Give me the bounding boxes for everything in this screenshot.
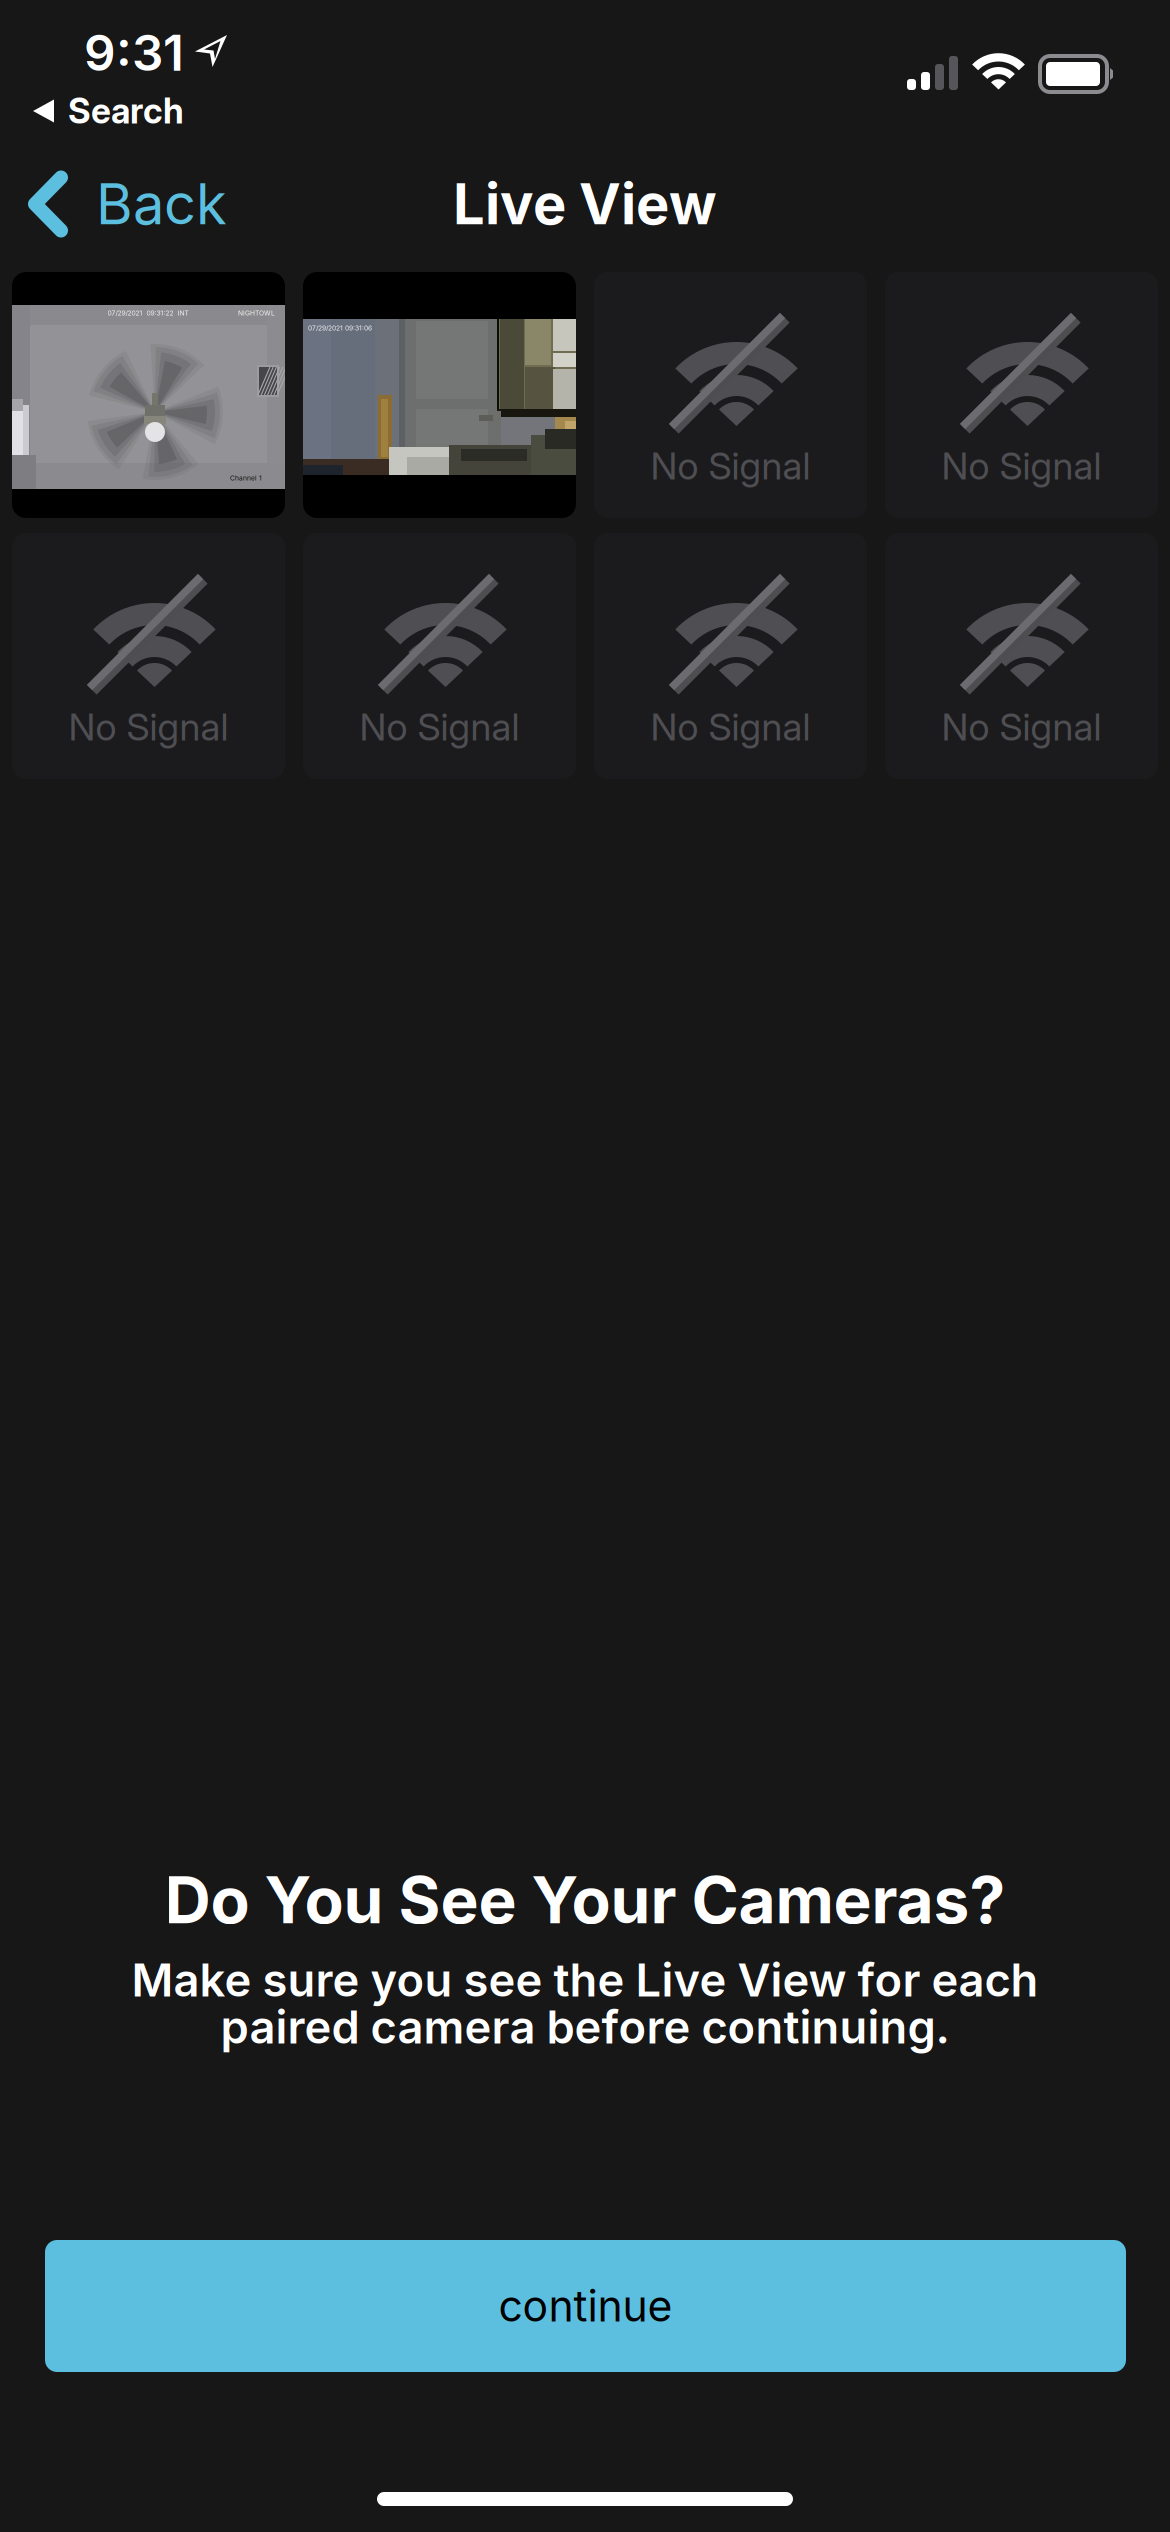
button[interactable]: continue [45, 2240, 1126, 2372]
staticText: Channel 1 [230, 474, 262, 482]
button[interactable]: Camera 2 live view [303, 272, 576, 518]
staticText: Search [68, 90, 184, 132]
staticText: No Signal [650, 443, 810, 489]
staticText: 07/29/2021 09:31:22 INT [107, 309, 188, 317]
staticText: 07/29/2021 09:31:06 [308, 324, 372, 332]
staticText: Do You See Your Cameras? [164, 1861, 1005, 1939]
staticText: paired camera before continuing. [220, 2000, 949, 2054]
staticText: No Signal [941, 704, 1101, 750]
staticText: Make sure you see the Live View for each [131, 1953, 1038, 2007]
button[interactable]: Camera 1 live view [12, 272, 285, 518]
staticText: continue [498, 2280, 672, 2332]
button[interactable]: Camera, No Signal [12, 533, 285, 779]
staticText: Live View [453, 170, 717, 238]
staticText: 9:31 [84, 23, 184, 83]
staticText: Back [96, 170, 227, 238]
staticText: NIGHTOWL [238, 309, 275, 317]
button[interactable]: Search [0, 85, 208, 137]
button[interactable]: Camera, No Signal [594, 272, 867, 518]
staticText: No Signal [68, 704, 228, 750]
staticText: No Signal [359, 704, 519, 750]
button[interactable]: Camera, No Signal [303, 533, 576, 779]
staticText: No Signal [941, 443, 1101, 489]
button[interactable]: Camera, No Signal [885, 533, 1158, 779]
button[interactable]: Back [0, 156, 247, 252]
staticText: No Signal [650, 704, 810, 750]
button[interactable]: Camera, No Signal [885, 272, 1158, 518]
button[interactable]: Camera, No Signal [594, 533, 867, 779]
